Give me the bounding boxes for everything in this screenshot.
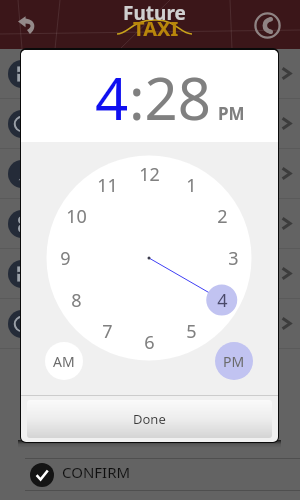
button[interactable]: Call <box>252 10 282 40</box>
staticText: 11 <box>97 173 118 197</box>
button[interactable]: 6 <box>133 330 165 354</box>
staticText: 4 <box>217 288 228 312</box>
staticText: 3 <box>228 246 239 270</box>
button[interactable]: 5 <box>175 319 207 343</box>
staticText: 8 <box>71 288 82 312</box>
button[interactable]: 12 <box>133 162 165 186</box>
button[interactable]: 1 <box>175 173 207 197</box>
button[interactable] <box>0 99 300 148</box>
button[interactable] <box>0 49 300 98</box>
staticText: 10 <box>66 204 87 228</box>
button[interactable]: 11 <box>91 173 123 197</box>
button[interactable]: Back <box>10 8 44 42</box>
staticText: CONFIRM <box>62 462 131 482</box>
staticText: 12 <box>139 162 160 186</box>
button[interactable]: 4 <box>95 58 129 137</box>
button[interactable]: 9 <box>49 246 81 270</box>
button[interactable]: PM <box>215 342 253 380</box>
button[interactable]: 10 <box>60 204 92 228</box>
button[interactable]: 2 <box>206 204 238 228</box>
button[interactable]: Done <box>27 400 272 438</box>
staticText: 6 <box>144 330 155 354</box>
button[interactable]: PM <box>218 102 245 125</box>
staticText: PM <box>223 352 245 371</box>
button[interactable] <box>0 299 300 348</box>
button[interactable] <box>0 249 300 298</box>
staticText: 9 <box>60 246 71 270</box>
button[interactable]: :28 <box>129 58 211 137</box>
staticText: 1 <box>186 173 197 197</box>
staticText: Future <box>123 0 186 26</box>
button[interactable]: Future Taxi <box>112 0 196 40</box>
staticText: 5 <box>186 319 197 343</box>
staticText: Done <box>133 410 166 428</box>
staticText: AM <box>53 352 75 371</box>
button[interactable]: 8 <box>60 288 92 312</box>
staticText: 7 <box>102 319 113 343</box>
staticText: 2 <box>217 204 228 228</box>
button[interactable] <box>0 149 300 198</box>
button[interactable] <box>0 199 300 248</box>
button[interactable]: CONFIRM <box>0 459 300 490</box>
button[interactable]: AM <box>45 342 83 380</box>
button[interactable]: 7 <box>91 319 123 343</box>
button[interactable]: 4 <box>206 288 238 312</box>
staticText: TAXI <box>133 15 179 42</box>
button[interactable]: 3 <box>217 246 249 270</box>
